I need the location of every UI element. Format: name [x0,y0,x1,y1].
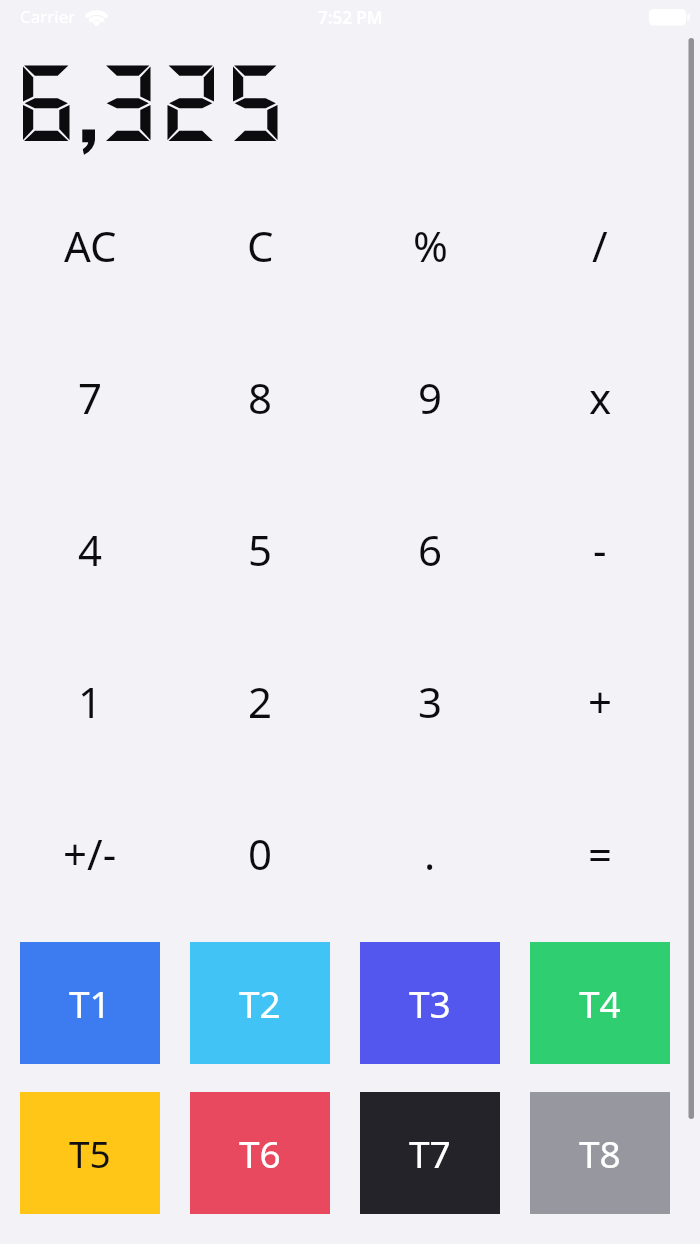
staticText: T4 [579,978,621,1028]
button[interactable]: T2 [190,942,330,1064]
staticText: 4 [78,521,103,578]
button[interactable]: AC [5,169,175,321]
button[interactable]: 6 [345,473,515,625]
button[interactable]: / [515,169,685,321]
staticText: % [413,217,448,274]
staticText: AC [64,217,117,274]
button[interactable]: + [515,625,685,777]
staticText: 0 [248,825,273,882]
staticText: 7:52 PM [318,6,383,29]
button[interactable]: x [515,321,685,473]
button[interactable]: 1 [5,625,175,777]
staticText: 5 [248,521,273,578]
staticText: x [589,369,612,426]
button[interactable]: 0 [175,777,345,929]
staticText: +/- [63,825,117,882]
button[interactable]: T4 [530,942,670,1064]
staticText: 7 [78,369,103,426]
staticText: C [247,217,274,274]
staticText: T1 [69,978,111,1028]
button[interactable]: T5 [20,1092,160,1214]
staticText: 9 [418,369,443,426]
button[interactable]: 5 [175,473,345,625]
button[interactable]: T1 [20,942,160,1064]
button[interactable]: 9 [345,321,515,473]
button[interactable]: T6 [190,1092,330,1214]
staticText: T3 [409,978,451,1028]
button[interactable]: 2 [175,625,345,777]
staticText: 8 [248,369,273,426]
button[interactable]: 3 [345,625,515,777]
staticText: + [588,673,613,730]
staticText: T5 [69,1128,111,1178]
button[interactable]: T3 [360,942,500,1064]
button[interactable]: C [175,169,345,321]
staticText: Carrier [20,5,76,28]
staticText: . [424,825,436,882]
staticText: T7 [409,1128,451,1178]
staticText: T8 [579,1128,621,1178]
staticText: / [592,217,608,274]
button[interactable]: = [515,777,685,929]
staticText: - [593,521,607,578]
button[interactable]: T7 [360,1092,500,1214]
staticText: T2 [239,978,281,1028]
button[interactable]: - [515,473,685,625]
staticText: 6 [418,521,443,578]
button[interactable]: +/- [5,777,175,929]
staticText: 1 [78,673,103,730]
staticText: T6 [239,1128,281,1178]
button[interactable]: T8 [530,1092,670,1214]
button[interactable]: % [345,169,515,321]
button[interactable]: . [345,777,515,929]
button[interactable]: 4 [5,473,175,625]
staticText: 3 [418,673,443,730]
staticText: 2 [248,673,273,730]
button[interactable]: 8 [175,321,345,473]
staticText: = [588,825,613,882]
button[interactable]: 7 [5,321,175,473]
